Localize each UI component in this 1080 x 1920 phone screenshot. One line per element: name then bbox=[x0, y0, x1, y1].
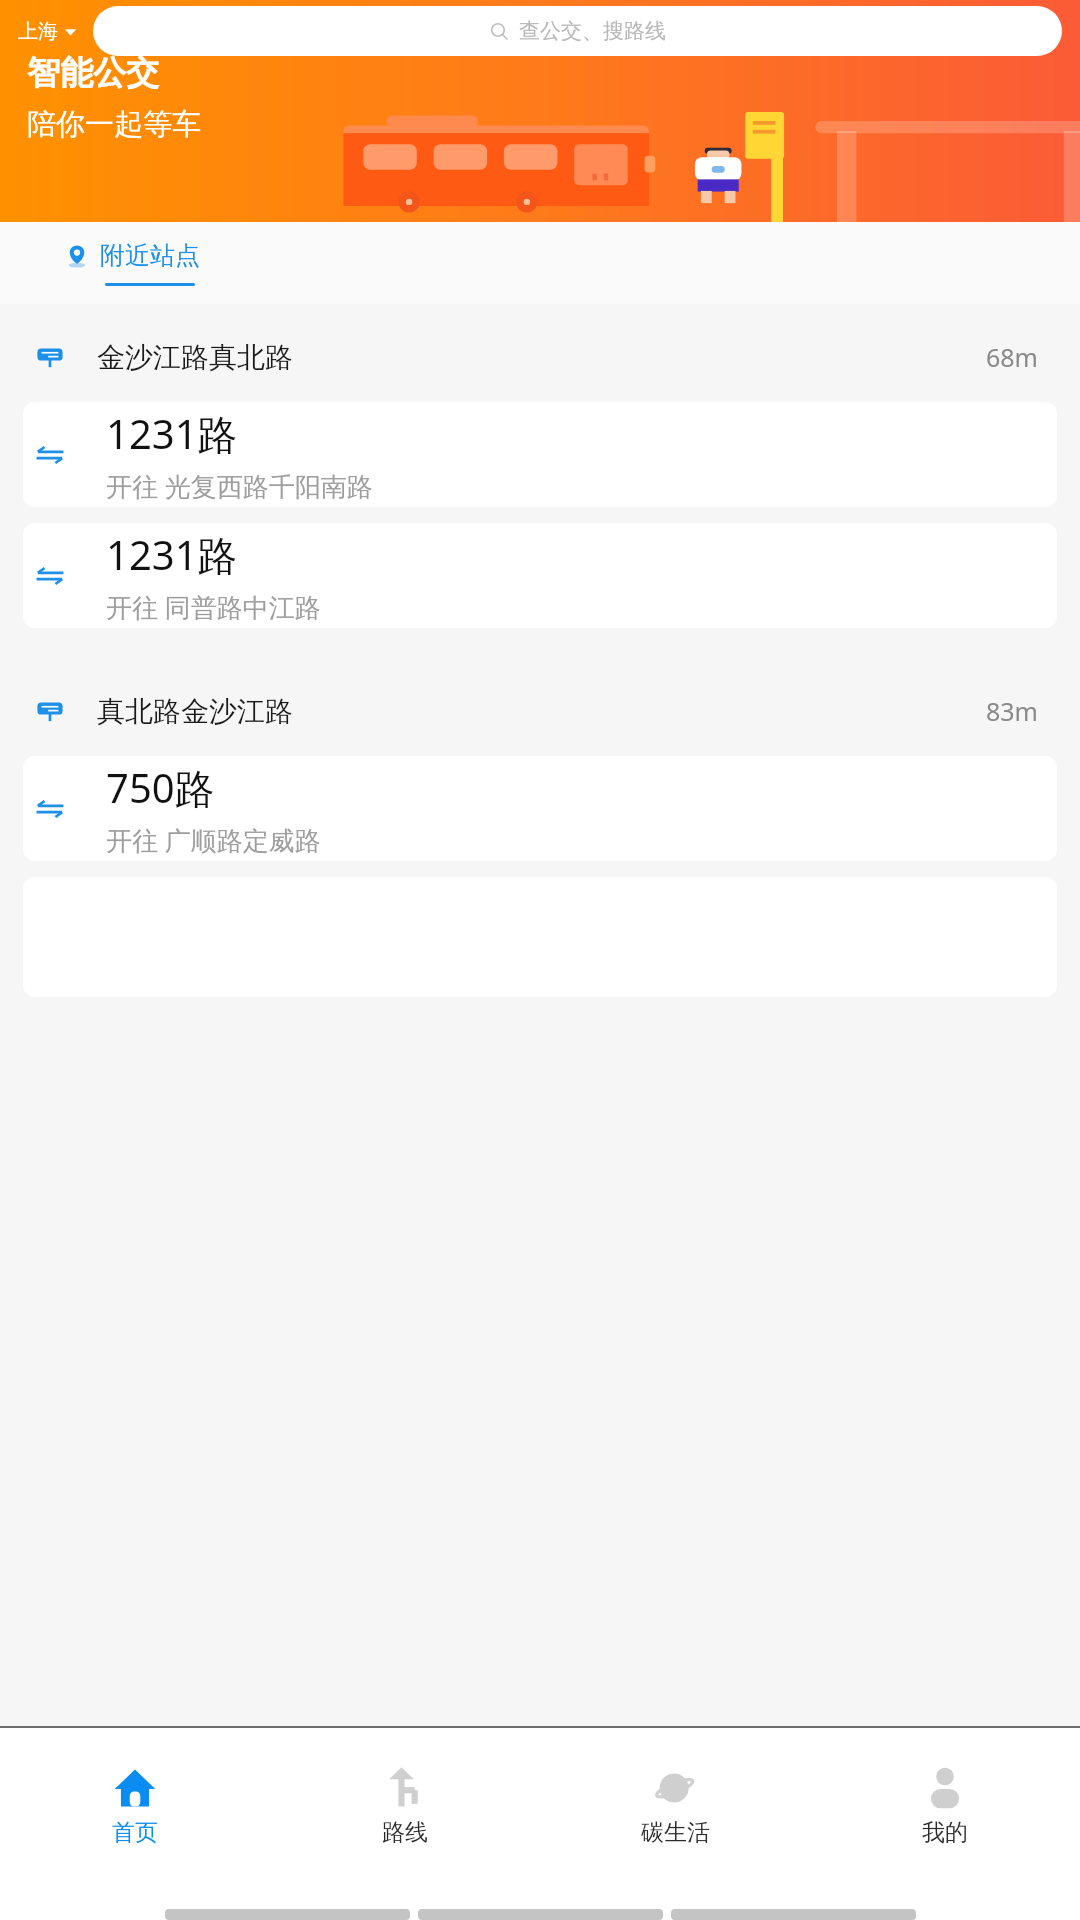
staticText: 路线 bbox=[382, 1818, 428, 1847]
staticText: 金沙江路真北路 bbox=[97, 340, 293, 375]
staticText: 上海 bbox=[18, 19, 58, 44]
staticText: 1231路 bbox=[106, 527, 238, 582]
staticText: 查公交、搜路线 bbox=[519, 18, 666, 44]
button[interactable]: 首页 bbox=[0, 1728, 270, 1878]
other: 我的 bbox=[923, 1766, 967, 1810]
button[interactable]: 真北路金沙江路 bbox=[0, 680, 1080, 742]
button[interactable]: 金沙江路真北路 bbox=[0, 326, 1080, 388]
staticText: 真北路金沙江路 bbox=[97, 694, 293, 729]
staticText: 开往 光复西路千阳南路 bbox=[106, 468, 373, 504]
staticText: 附近站点 bbox=[100, 240, 200, 271]
staticText: 开往 广顺路定威路 bbox=[106, 822, 321, 858]
staticText: 83m bbox=[986, 694, 1038, 728]
button[interactable]: 路线 bbox=[270, 1728, 540, 1878]
button[interactable]: 750路 bbox=[23, 756, 1057, 861]
button[interactable]: 我的 bbox=[810, 1728, 1080, 1878]
staticText: 首页 bbox=[112, 1818, 158, 1847]
button[interactable]: 上海 bbox=[14, 13, 81, 50]
staticText: 智能公交 bbox=[27, 52, 159, 94]
staticText: 碳生活 bbox=[641, 1818, 710, 1847]
staticText: 开往 同普路中江路 bbox=[106, 589, 321, 625]
button[interactable]: 附近站点 bbox=[64, 240, 200, 286]
staticText: 68m bbox=[986, 340, 1038, 374]
other: 碳生活 bbox=[653, 1766, 697, 1810]
other: 路线 bbox=[383, 1766, 427, 1810]
button[interactable]: 查公交、搜路线 bbox=[93, 6, 1062, 56]
staticText: 陪你一起等车 bbox=[27, 106, 201, 143]
staticText: 750路 bbox=[106, 760, 215, 815]
button[interactable]: 1231路 bbox=[23, 523, 1057, 628]
staticText: 我的 bbox=[922, 1818, 968, 1847]
staticText: 1231路 bbox=[106, 406, 238, 461]
button[interactable]: 碳生活 bbox=[540, 1728, 810, 1878]
button[interactable]: 1231路 bbox=[23, 402, 1057, 507]
